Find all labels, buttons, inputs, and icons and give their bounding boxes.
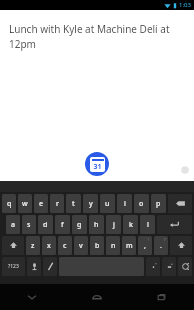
staticText: v: [79, 241, 83, 251]
button[interactable]: emoji: [178, 257, 192, 276]
staticText: !: [148, 237, 150, 242]
button[interactable]: q: [2, 194, 16, 213]
staticText: c: [63, 241, 67, 251]
staticText: j: [113, 220, 115, 230]
staticText: a: [11, 220, 16, 230]
staticText: 31: [93, 162, 102, 172]
button[interactable]: y: [83, 194, 98, 213]
button[interactable]: i: [117, 194, 132, 213]
staticText: h: [94, 220, 99, 230]
button[interactable]: pen: [43, 257, 57, 276]
button[interactable]: m: [122, 236, 136, 255]
button[interactable]: dot2: [162, 257, 176, 276]
button[interactable]: shift: [170, 236, 192, 255]
staticText: Lunch with Kyle at Machine Deli at 12pm: [9, 22, 180, 51]
button[interactable]: g: [72, 215, 87, 234]
button[interactable]: f: [55, 215, 70, 234]
button[interactable]: Hide keyboard: [0, 284, 64, 310]
button[interactable]: e: [34, 194, 48, 213]
staticText: p: [156, 199, 161, 209]
staticText: ?: [164, 237, 166, 242]
button[interactable]: del: [168, 194, 192, 213]
button[interactable]: c: [58, 236, 72, 255]
button[interactable]: t: [66, 194, 81, 213]
button[interactable]: ,: [138, 236, 152, 255]
button[interactable]: o: [134, 194, 149, 213]
staticText: 1:03: [179, 1, 191, 9]
button[interactable]: enter: [157, 215, 192, 234]
button[interactable]: s: [22, 215, 36, 234]
button[interactable]: b: [90, 236, 104, 255]
staticText: z: [31, 241, 35, 251]
button[interactable]: mic: [27, 257, 41, 276]
staticText: n: [111, 241, 116, 251]
button[interactable]: Recent apps: [129, 284, 194, 310]
staticText: s: [27, 220, 31, 230]
button[interactable]: r: [50, 194, 64, 213]
button[interactable]: j: [106, 215, 121, 234]
staticText: r: [56, 199, 59, 209]
staticText: q: [7, 199, 12, 209]
button[interactable]: n: [106, 236, 120, 255]
button[interactable]: u: [100, 194, 115, 213]
staticText: t: [72, 199, 75, 209]
button[interactable]: d: [38, 215, 53, 234]
staticText: u: [105, 199, 110, 209]
staticText: w: [22, 199, 28, 209]
staticText: d: [43, 220, 48, 230]
button[interactable]: dot1: [146, 257, 160, 276]
staticText: o: [139, 199, 144, 209]
button[interactable]: Add calendar event: [85, 152, 109, 176]
button[interactable]: Home: [64, 284, 129, 310]
button[interactable]: p: [151, 194, 166, 213]
button[interactable]: k: [123, 215, 138, 234]
staticText: l: [147, 220, 149, 230]
button[interactable]: h: [89, 215, 104, 234]
staticText: ?123: [8, 263, 19, 270]
button[interactable]: v: [74, 236, 88, 255]
button[interactable]: w: [18, 194, 32, 213]
staticText: x: [47, 241, 51, 251]
button[interactable]: ?123: [2, 257, 25, 276]
staticText: .: [160, 241, 162, 251]
button[interactable]: l: [140, 215, 155, 234]
staticText: e: [39, 199, 44, 209]
staticText: f: [61, 220, 64, 230]
staticText: ,: [144, 241, 146, 251]
staticText: g: [77, 220, 82, 230]
staticText: m: [126, 241, 133, 251]
button[interactable]: shift: [2, 236, 24, 255]
button[interactable]: a: [6, 215, 20, 234]
button[interactable]: z: [26, 236, 40, 255]
button[interactable]: .: [154, 236, 168, 255]
staticText: i: [124, 199, 126, 209]
staticText: b: [95, 241, 100, 251]
staticText: y: [89, 199, 93, 209]
button[interactable]: x: [42, 236, 56, 255]
staticText: k: [129, 220, 133, 230]
